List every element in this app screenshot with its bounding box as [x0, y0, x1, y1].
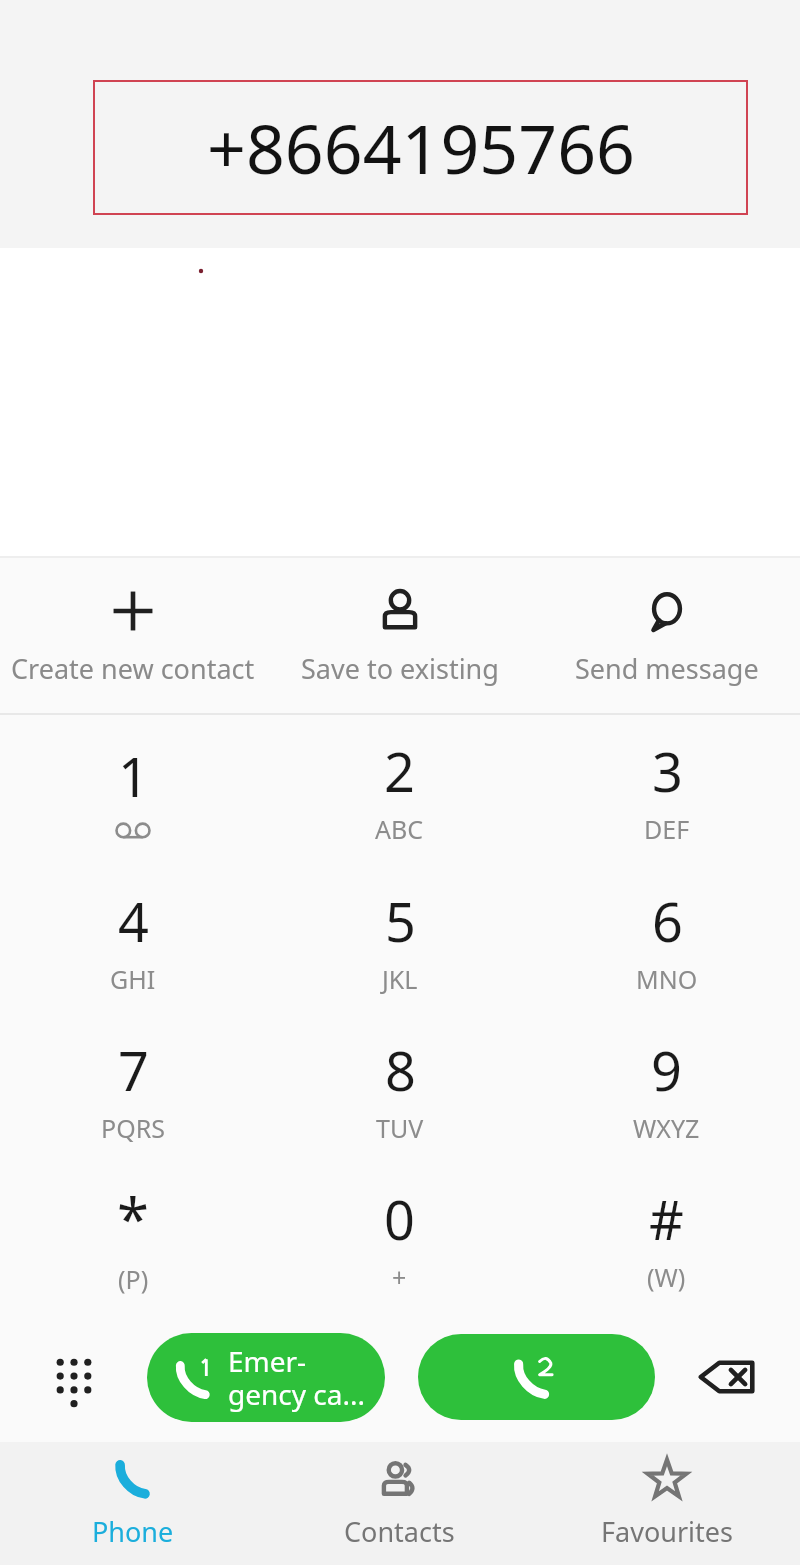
button[interactable]: *: [0, 1163, 266, 1312]
staticText: 1: [118, 739, 149, 813]
staticText: Contacts: [344, 1513, 455, 1550]
button[interactable]: 1: [0, 715, 266, 865]
staticText: 0: [384, 1182, 415, 1256]
staticText: MNO: [636, 962, 698, 996]
button[interactable]: Contacts: [266, 1442, 533, 1565]
button[interactable]: 9: [533, 1014, 800, 1163]
staticText: 2: [384, 734, 415, 808]
button[interactable]: 3: [533, 715, 800, 865]
staticText: 3: [652, 734, 683, 808]
staticText: *: [117, 1179, 149, 1258]
staticText: #: [649, 1182, 684, 1256]
staticText: 8: [385, 1033, 416, 1107]
button[interactable]: Favourites: [533, 1442, 800, 1565]
staticText: Save to existing: [301, 650, 499, 687]
button[interactable]: Dialpad: [0, 1312, 147, 1442]
staticText: Send message: [575, 650, 759, 687]
staticText: ABC: [375, 812, 424, 846]
staticText: 4: [118, 884, 149, 958]
button[interactable]: 4: [0, 865, 266, 1014]
staticText: 7: [118, 1033, 149, 1107]
button[interactable]: #: [533, 1163, 800, 1312]
button[interactable]: Emer- gency ca...: [147, 1333, 385, 1422]
staticText: Emer- gency ca...: [228, 1342, 365, 1413]
staticText: Create new contact: [11, 650, 255, 687]
button[interactable]: Create new contact: [0, 558, 266, 713]
staticText: Phone: [92, 1513, 174, 1550]
button[interactable]: 6: [533, 865, 800, 1014]
staticText: (W): [647, 1260, 686, 1294]
staticText: TUV: [376, 1111, 424, 1145]
button[interactable]: 7: [0, 1014, 266, 1163]
button[interactable]: 2: [266, 715, 533, 865]
button[interactable]: 8: [266, 1014, 533, 1163]
button[interactable]: Phone: [0, 1442, 266, 1565]
button[interactable]: Send message: [533, 558, 800, 713]
staticText: +8664195766: [207, 101, 635, 194]
button[interactable]: Call with SIM 2: [418, 1334, 655, 1420]
button[interactable]: 5: [266, 865, 533, 1014]
staticText: 5: [385, 884, 416, 958]
button[interactable]: Backspace: [655, 1312, 800, 1442]
staticText: PQRS: [101, 1111, 165, 1145]
staticText: JKL: [382, 962, 418, 996]
staticText: 9: [651, 1033, 682, 1107]
button[interactable]: 0: [266, 1163, 533, 1312]
staticText: GHI: [110, 962, 156, 996]
staticText: 6: [652, 884, 683, 958]
staticText: Favourites: [601, 1513, 733, 1550]
button[interactable]: Save to existing: [266, 558, 533, 713]
staticText: WXYZ: [633, 1111, 700, 1145]
staticText: DEF: [644, 812, 690, 846]
staticText: +: [392, 1260, 407, 1294]
button[interactable]: +8664195766: [93, 80, 748, 215]
staticText: (P): [118, 1262, 149, 1296]
